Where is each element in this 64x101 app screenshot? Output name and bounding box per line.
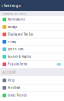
staticText: Notifications <box>8 18 25 21</box>
staticText: Storage <box>8 25 18 29</box>
staticText: Screen Time <box>8 47 24 51</box>
staticText: ACCOUNT <box>2 71 15 74</box>
staticText: Popular Items <box>8 62 27 66</box>
button[interactable]: Invite Friends <box>0 92 64 99</box>
staticText: Help <box>8 79 15 82</box>
button[interactable]: Storage <box>0 23 64 31</box>
button[interactable]: Screen Time <box>0 46 64 53</box>
staticText: Sounds & Haptics <box>8 55 31 58</box>
button[interactable]: Feedback <box>0 84 64 92</box>
button[interactable]: Privacy <box>0 38 64 46</box>
button[interactable]: Display and Text Size <box>0 31 64 38</box>
staticText: Settings <box>4 3 21 8</box>
staticText: Invite Friends <box>8 94 27 97</box>
staticText: Feedback <box>8 86 20 90</box>
staticText: GENERAL SETTINGS <box>2 12 25 15</box>
button[interactable]: Notifications <box>0 16 64 23</box>
staticText: Privacy <box>8 40 16 44</box>
button[interactable]: Popular Items <box>0 61 64 68</box>
button[interactable]: ‹ <box>0 2 21 9</box>
button[interactable]: Help <box>0 77 64 84</box>
button[interactable]: Sounds & Haptics <box>0 53 64 60</box>
staticText: ‹ <box>1 2 3 9</box>
staticText: Display and Text Size <box>8 33 34 36</box>
